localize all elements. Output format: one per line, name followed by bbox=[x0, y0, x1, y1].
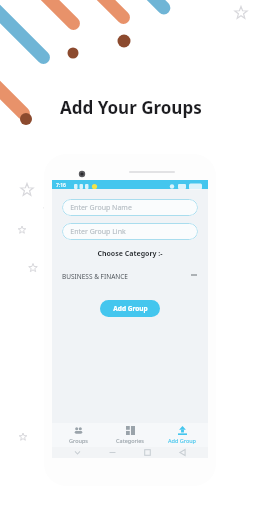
staticText: Add Your Groups bbox=[60, 96, 202, 119]
button[interactable]: Groups bbox=[52, 423, 104, 447]
button[interactable]: Enter Group Name bbox=[62, 199, 198, 216]
button[interactable]: Add Group bbox=[156, 423, 208, 447]
staticText: 7:16 bbox=[56, 182, 66, 189]
staticText: Add Group bbox=[113, 304, 148, 313]
staticText: BUSINESS & FINANCE bbox=[62, 272, 128, 281]
staticText: Categories bbox=[116, 437, 144, 444]
button[interactable]: BUSINESS & FINANCE bbox=[62, 269, 198, 283]
staticText: Enter Group Name bbox=[70, 203, 132, 213]
button[interactable]: Enter Group Link bbox=[62, 223, 198, 240]
staticText: Add Group bbox=[168, 437, 196, 444]
button[interactable]: Categories bbox=[104, 423, 156, 447]
staticText: Choose Category :- bbox=[97, 249, 163, 259]
button[interactable]: Add Group bbox=[100, 300, 160, 317]
staticText: Enter Group Link bbox=[70, 227, 126, 237]
staticText: Groups bbox=[69, 437, 88, 444]
